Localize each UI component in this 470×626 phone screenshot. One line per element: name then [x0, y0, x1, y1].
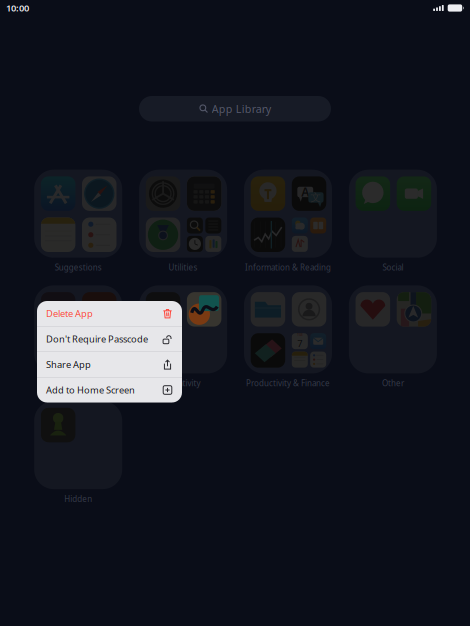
staticText: TUE — [297, 333, 302, 337]
staticText: Utilities — [169, 262, 198, 273]
staticText: Hidden — [64, 494, 92, 504]
staticText: Information & Reading — [245, 262, 331, 273]
staticText: Share App — [46, 358, 91, 371]
button[interactable]: Don't Require Passcode — [37, 326, 182, 351]
staticText: Games — [65, 378, 91, 388]
button[interactable]: Hidden — [34, 401, 122, 504]
staticText: 文 — [310, 191, 321, 204]
staticText: App Library — [212, 102, 271, 116]
button[interactable]: Share App — [37, 352, 182, 377]
staticText: Productivity & Finance — [246, 378, 330, 388]
staticText: Creativity — [166, 378, 201, 388]
staticText: 10:00 — [6, 2, 29, 14]
staticText: Other — [382, 378, 404, 388]
button[interactable]: Suggestions — [34, 170, 122, 273]
button[interactable]: Add to Home Screen — [37, 377, 182, 402]
button[interactable]: Utilities — [139, 170, 227, 273]
button[interactable]: TUE — [244, 285, 332, 388]
staticText: Delete App — [46, 307, 93, 320]
button[interactable]: Social — [349, 170, 437, 273]
staticText: Add to Home Screen — [46, 384, 135, 396]
button[interactable]: App Library — [139, 96, 331, 121]
staticText: Social — [382, 262, 403, 273]
button[interactable]: Delete App — [37, 301, 182, 326]
button[interactable]: Games — [34, 285, 122, 388]
button[interactable]: Creativity — [139, 285, 227, 388]
staticText: 7 — [297, 337, 302, 350]
staticText: Don't Require Passcode — [46, 333, 148, 345]
staticText: Suggestions — [55, 262, 102, 273]
button[interactable]: A — [244, 170, 332, 273]
button[interactable]: Other — [349, 285, 437, 388]
staticText: A — [301, 184, 309, 200]
